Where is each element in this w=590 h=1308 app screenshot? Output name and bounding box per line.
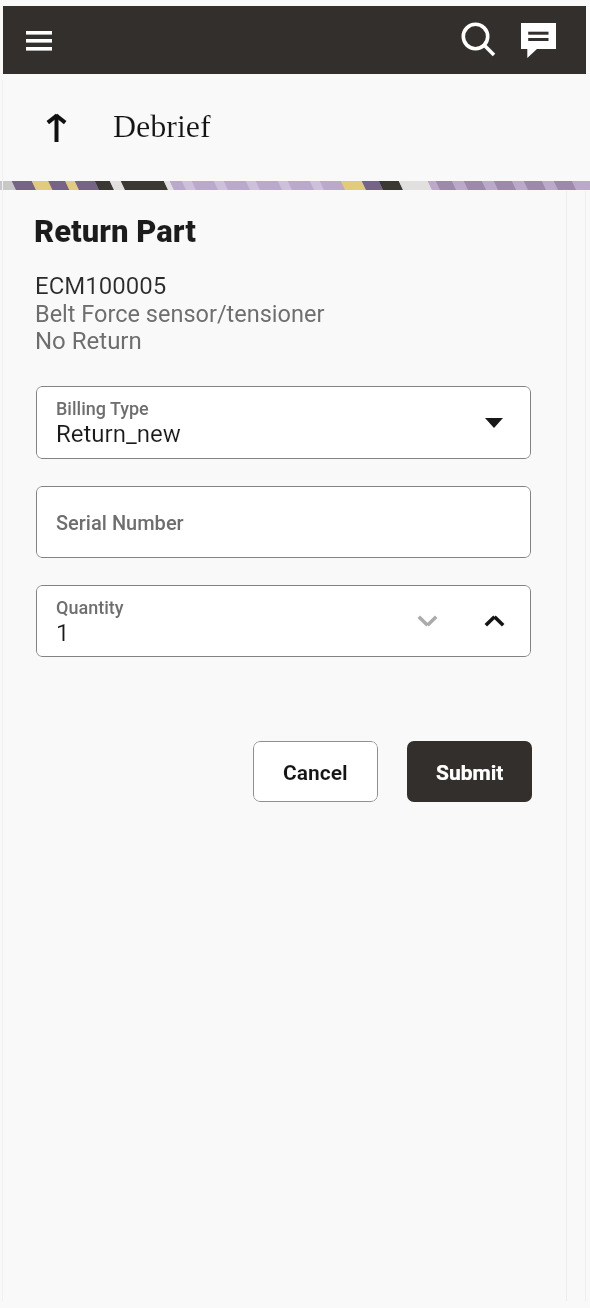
button[interactable]: Billing Type	[36, 386, 531, 459]
staticText: Return_new	[56, 420, 181, 448]
staticText: Serial Number	[56, 511, 184, 534]
button[interactable]: Cancel	[253, 741, 378, 802]
staticText: Quantity	[56, 597, 124, 618]
button[interactable]: Menu	[11, 12, 67, 68]
button[interactable]: Back	[32, 103, 80, 151]
staticText: Belt Force sensor/tensioner	[35, 300, 325, 328]
staticText: No Return	[35, 327, 142, 355]
staticText: 1	[56, 619, 70, 647]
button[interactable]: Messages	[512, 18, 565, 63]
staticText: Debrief	[113, 108, 211, 143]
staticText: Submit	[436, 761, 504, 786]
button[interactable]: Decrease quantity	[408, 602, 446, 640]
button[interactable]: Search	[450, 11, 508, 69]
button[interactable]: Submit	[407, 741, 532, 802]
button[interactable]: Open dropdown	[475, 404, 512, 441]
staticText: Return Part	[34, 213, 196, 249]
staticText: Billing Type	[56, 398, 149, 419]
staticText: Cancel	[283, 761, 348, 786]
staticText: ECM100005	[35, 272, 167, 300]
button[interactable]: Serial Number	[36, 486, 531, 558]
button[interactable]: Quantity	[36, 585, 531, 657]
button[interactable]: Increase quantity	[475, 602, 513, 640]
